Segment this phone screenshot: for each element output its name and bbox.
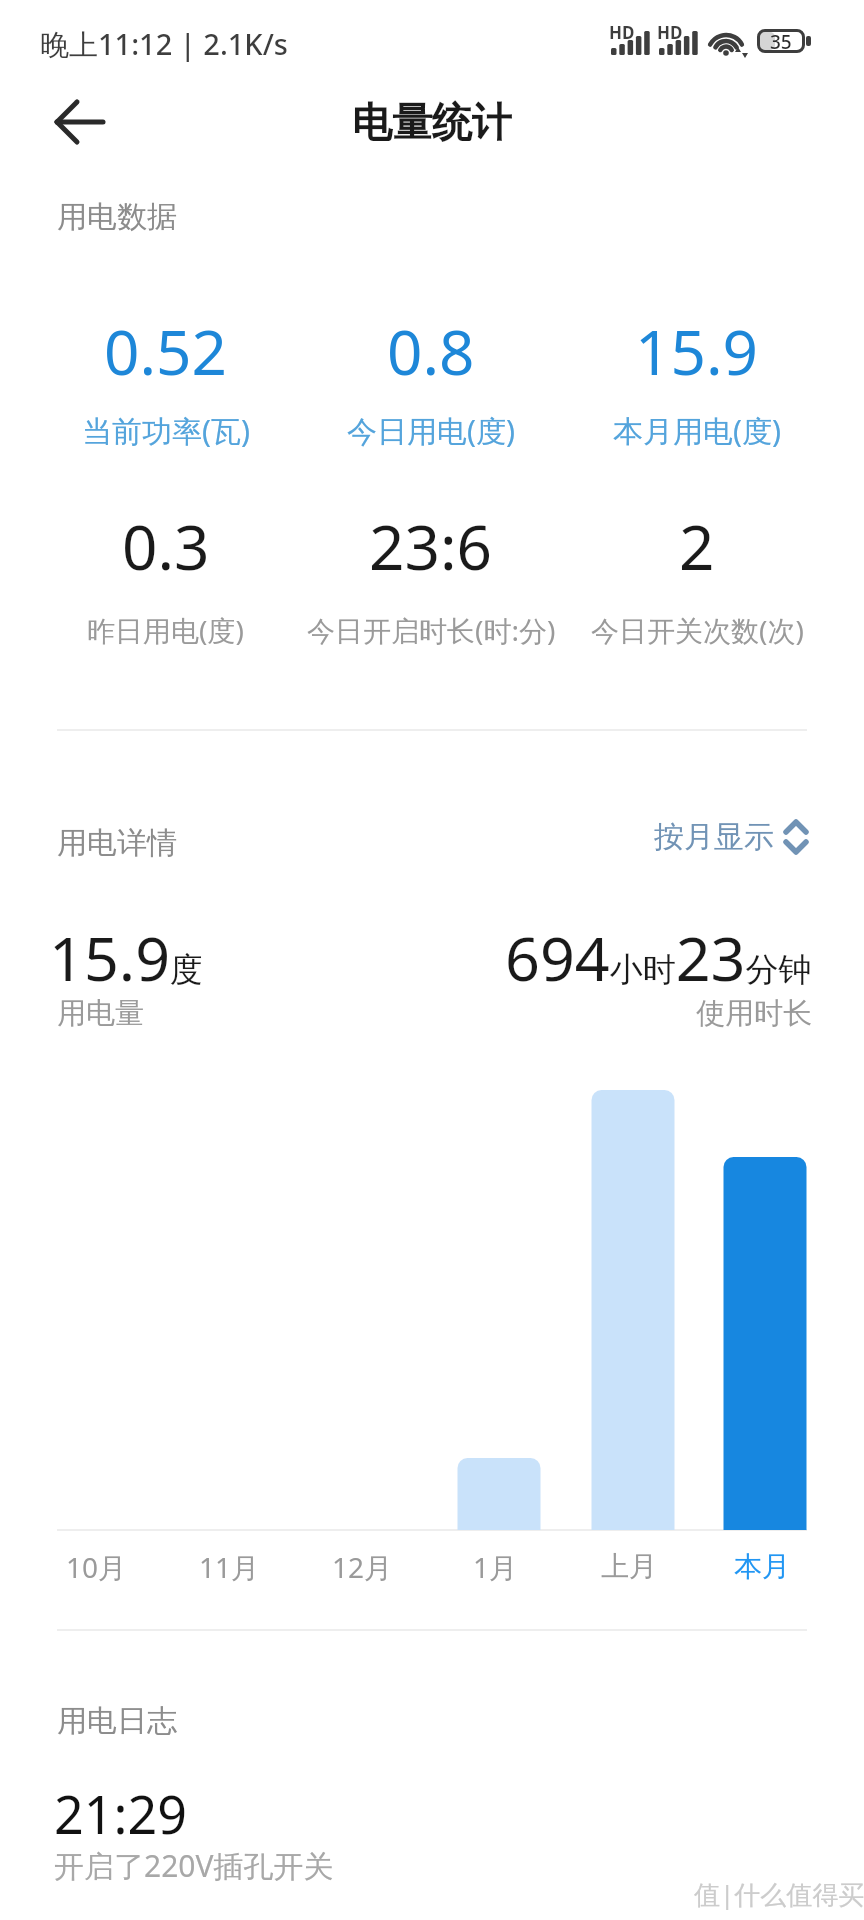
staticText: 值|什么值得买 — [694, 1876, 864, 1912]
staticText: 2 — [679, 504, 715, 584]
staticText: 昨日用电(度) — [87, 611, 244, 649]
button[interactable] — [56, 98, 106, 146]
staticText: 35 — [770, 29, 792, 53]
staticText: 本月用电(度) — [613, 410, 781, 451]
staticText: 21:29 — [54, 1778, 187, 1849]
staticText: 当前功率(瓦) — [82, 410, 250, 451]
staticText: 0.3 — [122, 504, 210, 584]
staticText: 1月 — [473, 1548, 518, 1584]
staticText: HD — [609, 21, 635, 44]
staticText: 694小时23分钟 — [505, 916, 812, 999]
staticText: 12月 — [332, 1548, 393, 1584]
staticText: 0.52 — [104, 309, 228, 389]
staticText: 11月 — [199, 1548, 260, 1584]
staticText: 上月 — [601, 1549, 657, 1584]
staticText: 今日开关次数(次) — [591, 611, 804, 649]
staticText: 今日开启时长(时:分) — [307, 611, 556, 649]
staticText: 用电日志 — [57, 1702, 177, 1740]
staticText: 晚上11:12 | 2.1K/s — [40, 24, 288, 64]
staticText: 15.9 — [635, 309, 759, 389]
staticText: 0.8 — [387, 309, 475, 389]
staticText: HD — [657, 21, 683, 44]
staticText: 用电详情 — [57, 824, 177, 862]
staticText: 用电数据 — [57, 198, 177, 236]
staticText: 用电量 — [57, 995, 144, 1032]
staticText: 使用时长 — [696, 995, 812, 1032]
button[interactable]: 按月显示 — [654, 818, 808, 856]
staticText: 10月 — [66, 1548, 127, 1584]
staticText: 15.9度 — [49, 916, 204, 999]
staticText: 本月 — [734, 1549, 790, 1584]
staticText: 23:6 — [369, 504, 493, 584]
staticText: 按月显示 — [654, 818, 774, 856]
staticText: 今日用电(度) — [347, 410, 515, 451]
staticText: 电量统计 — [352, 97, 512, 147]
staticText: 开启了220V插孔开关 — [54, 1845, 334, 1886]
